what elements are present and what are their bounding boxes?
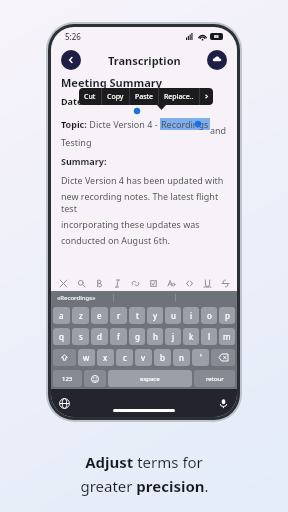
button[interactable]: Copy xyxy=(102,88,129,105)
staticText: new recording notes. The latest flight t… xyxy=(61,190,227,214)
button[interactable]: Format 4 xyxy=(129,277,141,289)
staticText: Date: xyxy=(61,95,85,107)
button[interactable]: Language xyxy=(59,398,70,409)
button[interactable]: Format 3 xyxy=(111,277,123,289)
staticText: a xyxy=(59,310,64,321)
button[interactable]: Format 2 xyxy=(93,277,105,289)
staticText: h xyxy=(153,331,158,342)
button[interactable]: l xyxy=(201,328,217,345)
button[interactable]: b xyxy=(154,349,171,366)
button[interactable]: Key xyxy=(53,349,76,366)
button[interactable]: u xyxy=(165,307,181,324)
staticText: Testing xyxy=(61,136,92,148)
staticText: q xyxy=(59,331,64,342)
staticText: s xyxy=(79,331,83,342)
staticText: Paste xyxy=(135,92,153,102)
button[interactable]: i xyxy=(183,307,199,324)
staticText: Copy xyxy=(107,92,124,102)
button[interactable]: Format 8 xyxy=(201,277,213,289)
button[interactable]: c xyxy=(116,349,133,366)
staticText: Replace.. xyxy=(164,92,194,102)
button[interactable]: e xyxy=(91,307,108,324)
button[interactable]: Format 6 xyxy=(165,277,177,289)
staticText: v xyxy=(141,352,146,363)
button[interactable]: m xyxy=(219,328,235,345)
button[interactable]: r xyxy=(110,307,127,324)
button[interactable]: w xyxy=(78,349,95,366)
staticText: ' xyxy=(200,352,202,363)
button[interactable]: p xyxy=(219,307,235,324)
button[interactable]: Format 1 xyxy=(75,277,87,289)
button[interactable]: Format 0 xyxy=(57,277,69,289)
staticText: Recordings xyxy=(161,118,209,130)
staticText: 88 xyxy=(214,34,219,39)
button[interactable]: Upload xyxy=(207,50,227,70)
button[interactable]: n xyxy=(173,349,190,366)
staticText: 123 xyxy=(62,375,73,383)
staticText: and xyxy=(210,112,227,136)
button[interactable]: Format 7 xyxy=(183,277,195,289)
button[interactable]: More xyxy=(200,88,213,105)
staticText: c xyxy=(123,352,127,363)
staticText: retour xyxy=(206,375,224,383)
button[interactable]: Back xyxy=(61,50,81,70)
staticText: z xyxy=(79,310,83,321)
button[interactable]: y xyxy=(147,307,163,324)
button[interactable]: d xyxy=(91,328,108,345)
staticText: t xyxy=(136,310,139,321)
button[interactable]: Paste xyxy=(130,88,158,105)
button[interactable]: t xyxy=(129,307,145,324)
staticText: conducted on August 6th. xyxy=(61,234,170,246)
button[interactable]: Replace.. xyxy=(159,88,199,105)
staticText: Meeting Summary xyxy=(61,75,162,90)
button[interactable]: ' xyxy=(192,349,209,366)
button[interactable]: a xyxy=(53,307,70,324)
staticText: w xyxy=(83,352,90,363)
button[interactable]: q xyxy=(53,328,70,345)
button[interactable]: h xyxy=(147,328,163,345)
button[interactable]: o xyxy=(201,307,217,324)
button[interactable]: k xyxy=(183,328,199,345)
staticText: g xyxy=(135,331,140,342)
staticText: d xyxy=(97,331,102,342)
staticText: Dicte Version 4 - xyxy=(87,118,160,130)
button[interactable]: retour xyxy=(194,370,235,387)
staticText: u xyxy=(171,310,176,321)
button[interactable]: s xyxy=(72,328,89,345)
staticText: m xyxy=(223,331,231,342)
button[interactable]: Format 5 xyxy=(147,277,159,289)
button[interactable]: Emoji xyxy=(84,370,106,387)
button[interactable]: Format 9 xyxy=(219,277,231,289)
staticText: f xyxy=(117,331,120,342)
button[interactable]: g xyxy=(129,328,145,345)
button[interactable]: Cut xyxy=(79,88,101,105)
button[interactable]: x xyxy=(97,349,114,366)
button[interactable]: espace xyxy=(108,370,192,387)
staticText: p xyxy=(225,310,230,321)
staticText: n xyxy=(179,352,184,363)
button[interactable]: v xyxy=(135,349,152,366)
staticText: «Recordings» xyxy=(57,294,96,302)
button[interactable]: 123 xyxy=(53,370,82,387)
staticText: l xyxy=(208,331,211,342)
button[interactable]: j xyxy=(165,328,181,345)
staticText: greater precision. xyxy=(80,476,209,496)
staticText: j xyxy=(172,331,175,342)
button[interactable]: Key xyxy=(211,349,235,366)
button[interactable]: Voice input xyxy=(218,398,229,409)
button[interactable]: z xyxy=(72,307,89,324)
staticText: incorporating these updates was xyxy=(61,218,200,230)
staticText: r xyxy=(117,310,121,321)
button[interactable]: f xyxy=(110,328,127,345)
button[interactable]: «Recordings» xyxy=(51,291,113,305)
staticText: espace xyxy=(140,375,160,383)
staticText: i xyxy=(190,310,193,321)
staticText: Adjust terms for xyxy=(85,452,203,472)
staticText: Cut xyxy=(84,92,96,102)
staticText: 5:26 xyxy=(65,31,81,42)
staticText: e xyxy=(97,310,102,321)
staticText: Transcription xyxy=(108,53,181,68)
staticText: y xyxy=(153,310,158,321)
